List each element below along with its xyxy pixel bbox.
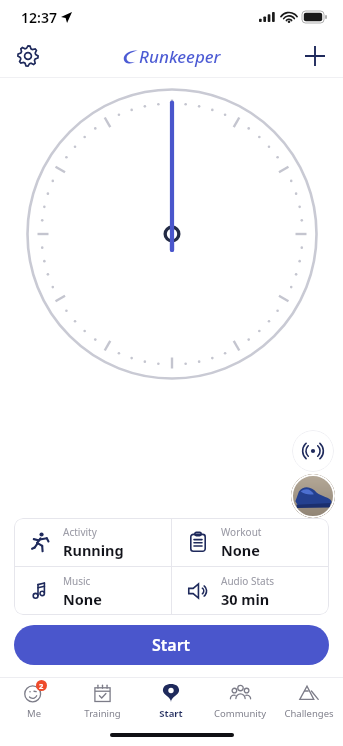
staticText: Start [152,634,191,656]
button[interactable]: Community [205,678,274,724]
button[interactable]: Settings [8,36,48,76]
button[interactable]: Training [68,678,136,724]
button[interactable]: Live tracking [292,430,334,472]
button[interactable]: Shoes [291,474,335,518]
staticText: Running [63,540,124,560]
button[interactable]: Add [295,36,335,76]
staticText: Runkeeper [139,45,221,68]
staticText: Start [159,707,183,720]
staticText: Activity [63,525,97,539]
staticText: 12:37 [21,8,57,27]
staticText: Me [27,707,41,720]
button[interactable]: Start [14,625,329,665]
staticText: Community [214,707,266,720]
button[interactable]: Workout [172,518,329,566]
button[interactable]: 2 [0,678,68,724]
staticText: None [221,540,260,560]
staticText: Audio Stats [221,574,275,588]
staticText: Workout [221,525,262,539]
button[interactable]: Music [14,567,171,615]
staticText: 30 min [221,589,270,609]
staticText: None [63,589,102,609]
button[interactable]: Challenges [274,678,343,724]
button[interactable]: Audio Stats [172,567,329,615]
staticText: Training [84,707,121,720]
staticText: 2 [39,681,44,691]
button[interactable]: Activity [14,518,171,566]
button[interactable]: Start [136,678,205,724]
staticText: Music [63,574,91,588]
staticText: Challenges [284,707,334,720]
